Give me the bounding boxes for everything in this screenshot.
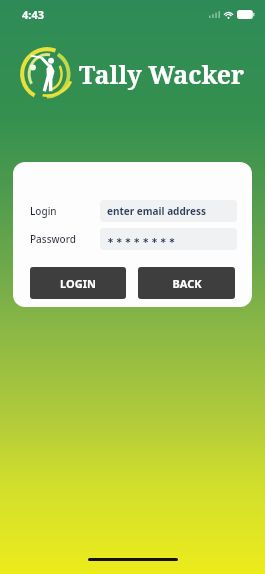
- staticText: ∗ ∗ ∗ ∗ ∗ ∗ ∗ ∗: [107, 234, 176, 245]
- staticText: Login: [30, 204, 100, 218]
- button[interactable]: enter email address: [100, 200, 237, 222]
- button[interactable]: BACK: [138, 267, 235, 299]
- staticText: 4:43: [22, 7, 44, 22]
- staticText: LOGIN: [60, 276, 96, 291]
- staticText: BACK: [172, 276, 202, 291]
- button[interactable]: ∗ ∗ ∗ ∗ ∗ ∗ ∗ ∗: [100, 228, 237, 250]
- staticText: Password: [30, 232, 100, 246]
- staticText: enter email address: [107, 204, 207, 218]
- staticText: Tally Wacker: [79, 57, 245, 91]
- other: Tally Wacker logo: [20, 47, 74, 101]
- button[interactable]: LOGIN: [30, 267, 126, 299]
